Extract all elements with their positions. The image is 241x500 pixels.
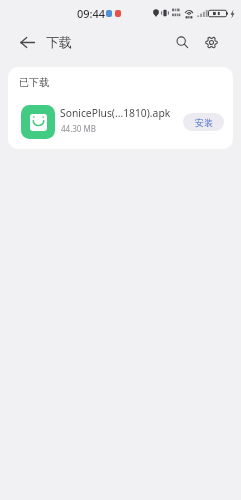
button[interactable]: Back: [13, 28, 41, 56]
staticText: 下载: [46, 34, 72, 50]
button[interactable]: SonicePlus(...1810).apk: [8, 99, 233, 145]
staticText: 44.30 MB: [61, 123, 96, 134]
button[interactable]: Settings: [197, 28, 225, 56]
staticText: 已下载: [19, 76, 49, 89]
staticText: 09:44: [77, 6, 106, 21]
button[interactable]: Search: [168, 28, 196, 56]
staticText: 安装: [195, 117, 213, 128]
staticText: SonicePlus(...1810).apk: [60, 106, 171, 120]
button[interactable]: 安装: [183, 113, 224, 131]
